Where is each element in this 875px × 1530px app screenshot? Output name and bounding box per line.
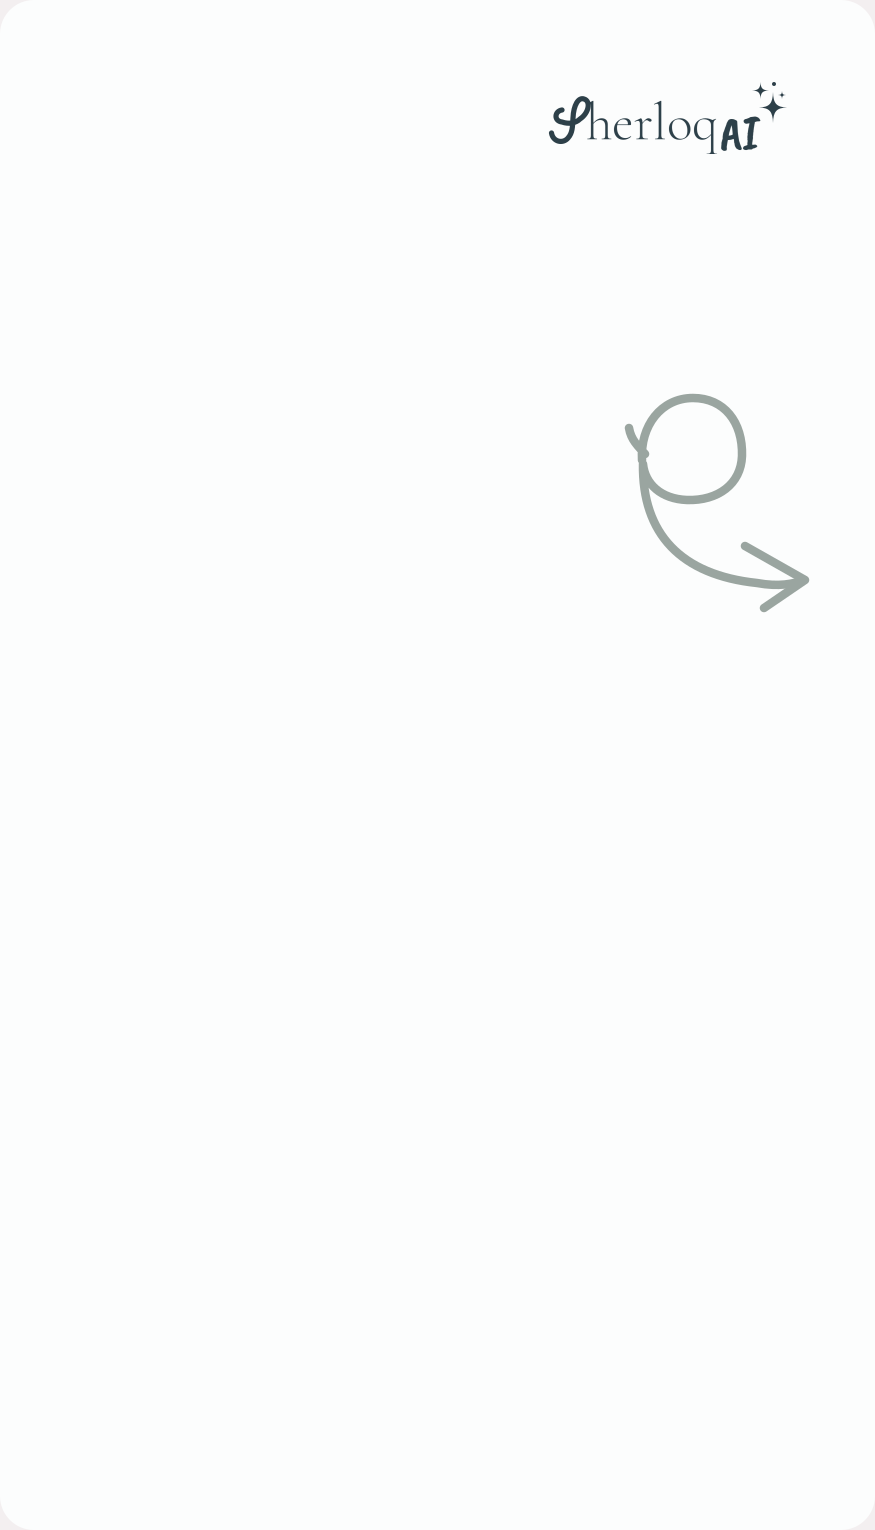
button[interactable]: SherloqAI bbox=[545, 58, 795, 158]
staticText: AI bbox=[720, 102, 760, 162]
staticText: herloq bbox=[586, 90, 718, 155]
